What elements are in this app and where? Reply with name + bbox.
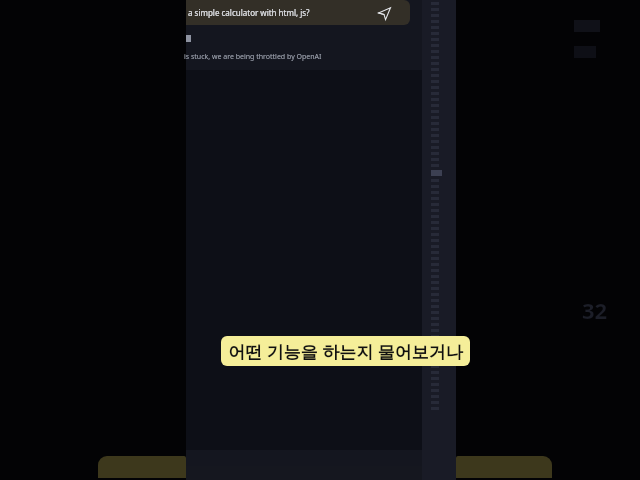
staticText: is stuck, we are being throttled by Open… (184, 52, 322, 62)
staticText: a simple calculator with html, js? (188, 7, 310, 18)
staticText: 어떤 기능을 하는지 물어보거나 (228, 340, 463, 363)
button[interactable]: Send (372, 1, 396, 25)
button[interactable]: a simple calculator with html, js? (186, 0, 410, 25)
staticText: 32 (582, 295, 608, 325)
button[interactable]: 어떤 기능을 하는지 물어보거나 (228, 336, 463, 366)
